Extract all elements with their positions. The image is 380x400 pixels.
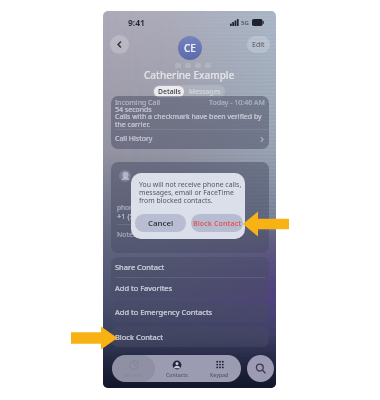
button[interactable]: Add to Favorites [111, 278, 269, 298]
button[interactable]: Back [110, 35, 129, 54]
button[interactable]: Call History [111, 130, 269, 148]
staticText: Keypad [210, 371, 229, 378]
button[interactable]: Share Contact [111, 257, 269, 277]
staticText: phone [117, 203, 137, 212]
button[interactable]: Messages [185, 85, 225, 98]
staticText: 5G [241, 19, 249, 27]
staticText: Today - 10:46 AM [209, 98, 265, 108]
staticText: Edit [252, 40, 265, 50]
staticText: Details [158, 87, 181, 96]
staticText: +1 (555) 555-0100 [117, 211, 180, 221]
staticText: CE [184, 41, 196, 55]
button[interactable]: Contacts [155, 355, 198, 382]
staticText: 9:41 [128, 17, 145, 29]
button[interactable]: Add to Emergency Contacts [111, 301, 269, 322]
staticText: Add to Emergency Contacts [115, 307, 213, 317]
staticText: Add to Favorites [115, 283, 173, 293]
button[interactable]: Block Contact [191, 214, 243, 232]
staticText: Calls with a checkmark have been verifie… [115, 112, 262, 129]
staticText: Block Contact [193, 218, 242, 228]
staticText: 54 seconds [115, 105, 152, 115]
button[interactable]: Recents [112, 355, 155, 382]
staticText: Notes [117, 230, 137, 240]
staticText: Call History [115, 134, 153, 144]
button[interactable]: Block Contact [111, 326, 269, 347]
staticText: Catherine Example [144, 68, 235, 82]
button[interactable]: Keypad [198, 355, 241, 382]
button[interactable]: Details [154, 86, 184, 97]
staticText: Messages [189, 87, 221, 96]
staticText: Contacts [166, 371, 188, 378]
button[interactable]: Search [247, 355, 274, 382]
staticText: Cancel [148, 218, 174, 229]
staticText: Incoming Call [115, 98, 161, 108]
staticText: Share Contact [115, 262, 165, 272]
button[interactable]: Cancel [135, 214, 186, 232]
staticText: You will not receive phone calls, messag… [139, 180, 243, 205]
staticText: Block Contact [115, 332, 164, 342]
button[interactable]: Edit [247, 36, 270, 53]
